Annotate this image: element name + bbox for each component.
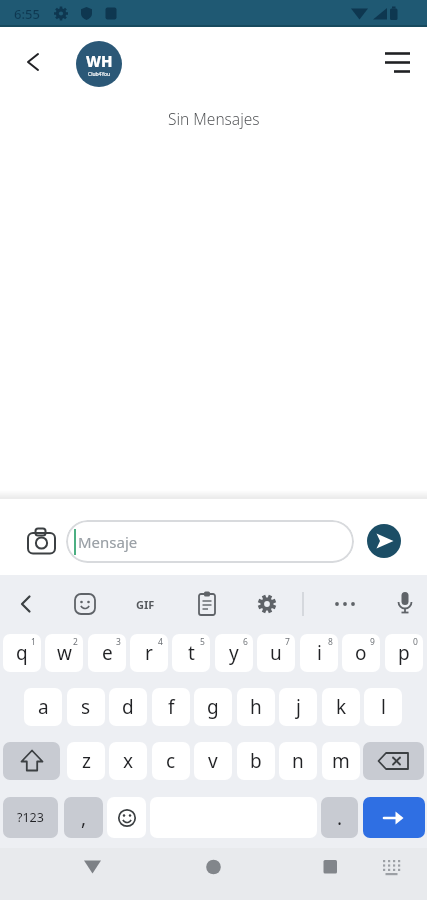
button[interactable] (107, 797, 146, 838)
staticText: Sin Mensajes (168, 108, 260, 129)
button[interactable] (3, 742, 60, 780)
staticText: ?123 (17, 809, 44, 826)
staticText: x (123, 748, 134, 774)
button[interactable] (392, 589, 418, 617)
button[interactable]: l (364, 688, 402, 726)
staticText: 4 (158, 636, 163, 648)
button[interactable] (363, 797, 425, 838)
staticText: f (168, 694, 175, 720)
staticText: z (82, 748, 91, 774)
staticText: . (337, 805, 343, 831)
button[interactable] (18, 47, 48, 77)
staticText: v (208, 748, 218, 774)
button[interactable]: e (88, 634, 126, 672)
button[interactable]: GIF (130, 592, 160, 616)
staticText: h (250, 694, 262, 720)
staticText: q (16, 640, 28, 666)
button[interactable]: k (322, 688, 360, 726)
staticText: 7 (285, 636, 290, 648)
staticText: 2 (73, 636, 78, 648)
button[interactable]: f (152, 688, 190, 726)
staticText: g (207, 694, 219, 720)
button[interactable]: u (257, 634, 295, 672)
button[interactable]: h (237, 688, 275, 726)
staticText: Club4You (88, 71, 111, 78)
staticText: , (81, 805, 87, 831)
staticText: o (355, 640, 367, 666)
staticText: 6:55 (14, 5, 40, 23)
button[interactable]: m (322, 742, 360, 780)
staticText: 9 (370, 636, 375, 648)
button[interactable] (68, 848, 116, 900)
button[interactable]: t (172, 634, 210, 672)
staticText: n (292, 748, 304, 774)
button[interactable]: ?123 (3, 797, 58, 838)
button[interactable] (381, 48, 413, 76)
button[interactable]: w (45, 634, 83, 672)
staticText: Mensaje (78, 532, 138, 552)
staticText: 0 (413, 636, 418, 648)
staticText: b (250, 748, 262, 774)
staticText: 6 (243, 636, 248, 648)
button[interactable]: i (300, 634, 338, 672)
button[interactable] (332, 591, 358, 617)
button[interactable]: g (194, 688, 232, 726)
button[interactable]: s (67, 688, 105, 726)
button[interactable]: x (109, 742, 147, 780)
staticText: 1 (31, 636, 36, 648)
staticText: a (38, 694, 49, 720)
staticText: 8 (328, 636, 333, 648)
button[interactable]: c (152, 742, 190, 780)
button[interactable]: . (321, 797, 358, 838)
button[interactable] (254, 591, 280, 617)
staticText: GIF (136, 597, 155, 612)
button[interactable]: d (109, 688, 147, 726)
button[interactable]: , (64, 797, 103, 838)
button[interactable] (72, 591, 98, 617)
button[interactable]: z (67, 742, 105, 780)
staticText: r (145, 640, 153, 666)
staticText: u (270, 640, 282, 666)
button[interactable] (367, 524, 401, 558)
button[interactable] (189, 848, 237, 900)
button[interactable] (194, 590, 220, 618)
button[interactable] (26, 527, 58, 556)
staticText: s (81, 694, 91, 720)
button[interactable]: y (215, 634, 253, 672)
staticText: WH (86, 51, 113, 71)
staticText: j (296, 694, 301, 720)
button[interactable]: o (342, 634, 380, 672)
staticText: 5 (200, 636, 205, 648)
staticText: w (57, 640, 72, 666)
button[interactable] (376, 848, 416, 900)
staticText: 3 (116, 636, 121, 648)
button[interactable]: v (194, 742, 232, 780)
button[interactable]: b (237, 742, 275, 780)
button[interactable]: n (279, 742, 317, 780)
staticText: t (188, 640, 195, 666)
staticText: l (381, 694, 386, 720)
button[interactable]: q (3, 634, 41, 672)
staticText: d (122, 694, 134, 720)
staticText: c (166, 748, 176, 774)
staticText: e (102, 640, 113, 666)
button[interactable]: j (279, 688, 317, 726)
button[interactable] (12, 592, 40, 616)
staticText: y (229, 640, 239, 666)
staticText: m (332, 748, 350, 774)
button[interactable]: a (24, 688, 62, 726)
button[interactable]: WH (76, 41, 122, 87)
staticText: p (398, 640, 410, 666)
button[interactable]: Mensaje (66, 520, 354, 563)
staticText: i (317, 640, 322, 666)
button[interactable]: p (385, 634, 423, 672)
button[interactable] (363, 742, 424, 780)
button[interactable] (306, 848, 354, 900)
staticText: k (336, 694, 347, 720)
button[interactable]: r (130, 634, 168, 672)
